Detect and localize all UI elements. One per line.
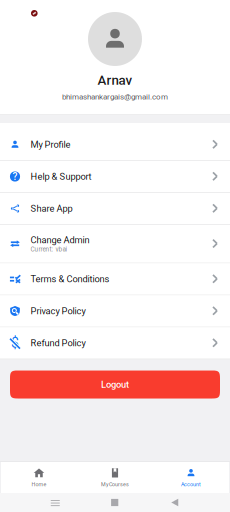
staticText: Help & Support	[30, 171, 91, 182]
staticText: Share App	[30, 203, 72, 214]
staticText: Logout	[101, 379, 129, 390]
button[interactable]: Privacy Policy	[0, 295, 230, 326]
button[interactable]: Account	[153, 462, 229, 493]
staticText: Change Admin	[30, 234, 89, 245]
staticText: My Profile	[30, 139, 70, 150]
button[interactable]: ?	[0, 161, 230, 192]
staticText: Terms & Conditions	[30, 273, 109, 284]
staticText: $	[11, 335, 19, 351]
button[interactable]: Share App	[0, 193, 230, 224]
staticText: Current: vbai	[30, 245, 67, 253]
staticText: Account	[181, 481, 201, 488]
staticText: bhimashankargais@gmail.com	[62, 92, 168, 101]
staticText: Arnav	[97, 72, 132, 88]
button[interactable]: Logout	[10, 370, 220, 398]
button[interactable]: Change Admin	[0, 225, 230, 262]
staticText: Home	[31, 481, 46, 488]
staticText: MyCourses	[101, 481, 129, 488]
staticText: Privacy Policy	[30, 305, 85, 316]
button[interactable]: $	[0, 327, 230, 358]
staticText: Refund Policy	[30, 337, 85, 348]
staticText: ?	[12, 170, 17, 182]
button[interactable]: Terms & Conditions	[0, 263, 230, 294]
button[interactable]: Home	[1, 462, 77, 493]
button[interactable]: My Profile	[0, 129, 230, 160]
button[interactable]: MyCourses	[77, 462, 153, 493]
